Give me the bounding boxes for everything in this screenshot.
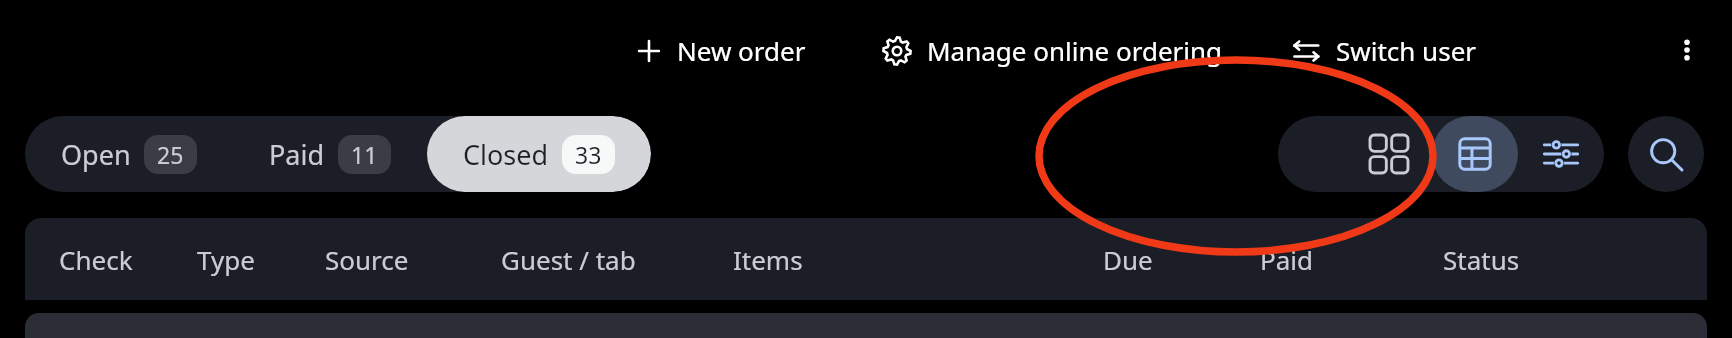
button[interactable]: Search — [1628, 116, 1704, 192]
staticText: Status — [1443, 242, 1520, 277]
staticText: Paid — [269, 136, 325, 173]
staticText: 33 — [575, 139, 602, 170]
staticText: Closed — [463, 136, 549, 173]
staticText: New order — [677, 33, 806, 68]
button[interactable]: Open — [25, 116, 233, 192]
staticText: Check — [59, 242, 133, 277]
staticText: Paid — [1260, 242, 1314, 277]
staticText: Items — [733, 242, 803, 277]
staticText: 25 — [157, 139, 184, 170]
staticText: Switch user — [1336, 33, 1477, 68]
button[interactable]: Table view — [1432, 116, 1518, 192]
button[interactable]: Grid view — [1346, 116, 1432, 192]
button[interactable]: Filters — [1518, 116, 1604, 192]
button[interactable]: Switch user — [1283, 25, 1483, 76]
staticText: Manage online ordering — [927, 33, 1223, 68]
button[interactable]: Paid — [233, 116, 427, 192]
staticText: Source — [325, 242, 409, 277]
button[interactable]: New order — [628, 25, 812, 76]
button[interactable]: Manage online ordering — [874, 25, 1229, 76]
staticText: Type — [197, 242, 255, 277]
staticText: Due — [1103, 242, 1153, 277]
staticText: Open — [61, 136, 131, 173]
staticText: Guest / tab — [501, 242, 636, 277]
staticText: 11 — [351, 139, 378, 170]
button[interactable]: Closed — [427, 116, 651, 192]
button[interactable]: More options — [1658, 21, 1716, 79]
